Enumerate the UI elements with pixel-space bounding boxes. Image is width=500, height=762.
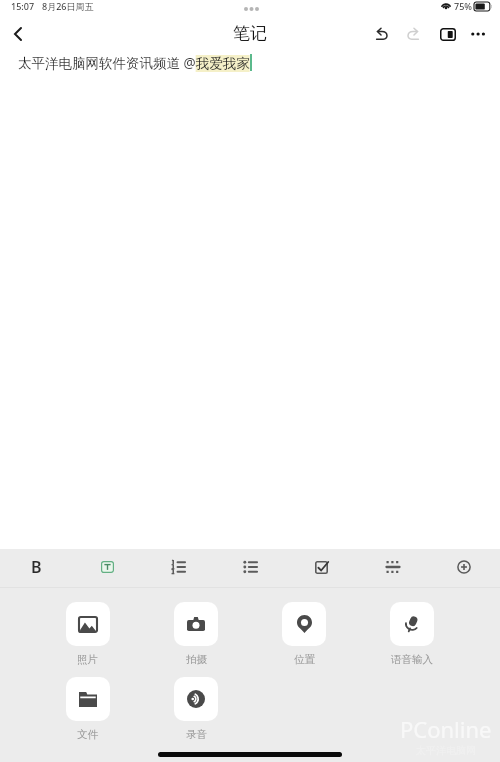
button[interactable]: 拍摄	[142, 602, 250, 666]
button[interactable]: Checklist	[306, 552, 336, 582]
staticText: 录音	[186, 728, 207, 741]
staticText: 太平洋电脑网软件资讯频道 @我爱我家	[18, 54, 250, 72]
button[interactable]: 录音	[142, 677, 250, 741]
button[interactable]: Undo	[367, 18, 397, 50]
button[interactable]: More options	[462, 18, 492, 50]
button[interactable]: Divider	[378, 552, 408, 582]
button[interactable]: Text style	[92, 552, 122, 582]
button[interactable]: Bold	[21, 552, 51, 582]
button[interactable]: 位置	[250, 602, 358, 666]
button[interactable]: Split screen	[433, 18, 463, 50]
button[interactable]: Redo	[398, 18, 428, 50]
button[interactable]: 语音输入	[358, 602, 466, 666]
button[interactable]: Insert	[449, 552, 479, 582]
staticText: B	[31, 556, 42, 578]
staticText: 语音输入	[391, 653, 433, 666]
button[interactable]: 文件	[33, 677, 142, 741]
button[interactable]: 照片	[33, 602, 142, 666]
staticText: 拍摄	[186, 653, 207, 666]
button[interactable]: Numbered list	[163, 552, 193, 582]
staticText: 75%	[454, 0, 472, 12]
staticText: PConline	[400, 714, 492, 744]
staticText: 文件	[77, 728, 98, 741]
staticText: 照片	[77, 653, 98, 666]
button[interactable]: Bullet list	[235, 552, 265, 582]
staticText: 位置	[294, 653, 315, 666]
staticText: 8月26日周五	[42, 0, 94, 12]
staticText: 笔记	[233, 23, 267, 44]
staticText: 15:07	[11, 0, 35, 12]
button[interactable]: Back	[0, 18, 35, 50]
